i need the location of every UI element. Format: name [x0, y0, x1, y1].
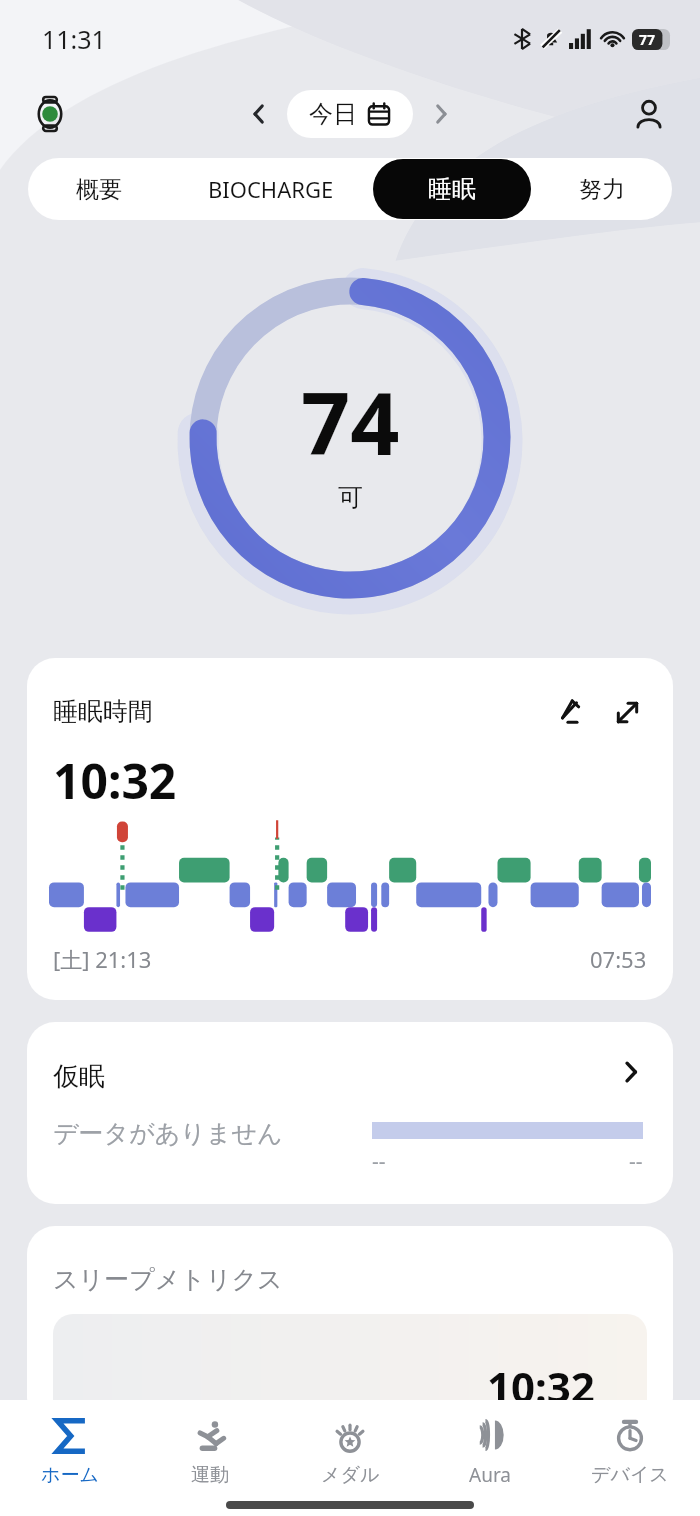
- staticText: Aura: [469, 1462, 512, 1488]
- button[interactable]: Open naps: [607, 1048, 655, 1096]
- staticText: 77: [639, 30, 656, 49]
- button[interactable]: 努力: [531, 158, 672, 220]
- staticText: 仮眠: [53, 1060, 105, 1093]
- button[interactable]: Expand: [603, 688, 651, 736]
- button[interactable]: メダル: [280, 1400, 420, 1494]
- button[interactable]: Edit: [545, 688, 593, 736]
- staticText: BIOCHARGE: [208, 174, 334, 204]
- button[interactable]: 今日: [287, 90, 413, 138]
- staticText: [土] 21:13: [53, 944, 152, 974]
- button[interactable]: 仮眠: [27, 1022, 673, 1204]
- staticText: ホーム: [41, 1463, 99, 1487]
- button[interactable]: 概要: [28, 158, 169, 220]
- staticText: 睡眠時間: [53, 696, 153, 727]
- button[interactable]: 睡眠時間: [27, 658, 673, 1000]
- staticText: 07:53: [590, 944, 647, 974]
- staticText: 睡眠: [428, 174, 476, 204]
- button[interactable]: ホーム: [0, 1400, 140, 1494]
- staticText: 10:32: [53, 748, 177, 813]
- staticText: 10:32: [487, 1358, 595, 1415]
- staticText: 74: [301, 363, 400, 480]
- staticText: データがありません: [53, 1118, 283, 1149]
- staticText: 可: [338, 482, 363, 513]
- staticText: --: [372, 1147, 386, 1176]
- button[interactable]: スリープメトリクス: [27, 1226, 673, 1426]
- staticText: スリープメトリクス: [53, 1264, 283, 1295]
- staticText: 概要: [76, 175, 122, 204]
- staticText: --: [629, 1147, 643, 1176]
- button[interactable]: Profile: [624, 89, 674, 139]
- staticText: 努力: [579, 175, 625, 204]
- button[interactable]: Watch: [24, 88, 76, 140]
- button[interactable]: Next day: [419, 92, 463, 136]
- button[interactable]: デバイス: [560, 1400, 700, 1494]
- staticText: メダル: [321, 1463, 380, 1487]
- staticText: デバイス: [591, 1463, 669, 1487]
- button[interactable]: 運動: [140, 1400, 280, 1494]
- button[interactable]: Aura: [420, 1400, 560, 1494]
- button[interactable]: BIOCHARGE: [169, 158, 373, 220]
- button[interactable]: Previous day: [237, 92, 281, 136]
- staticText: 今日: [309, 99, 357, 129]
- staticText: 運動: [191, 1463, 229, 1487]
- button[interactable]: 睡眠: [373, 159, 531, 219]
- staticText: 11:31: [42, 22, 106, 56]
